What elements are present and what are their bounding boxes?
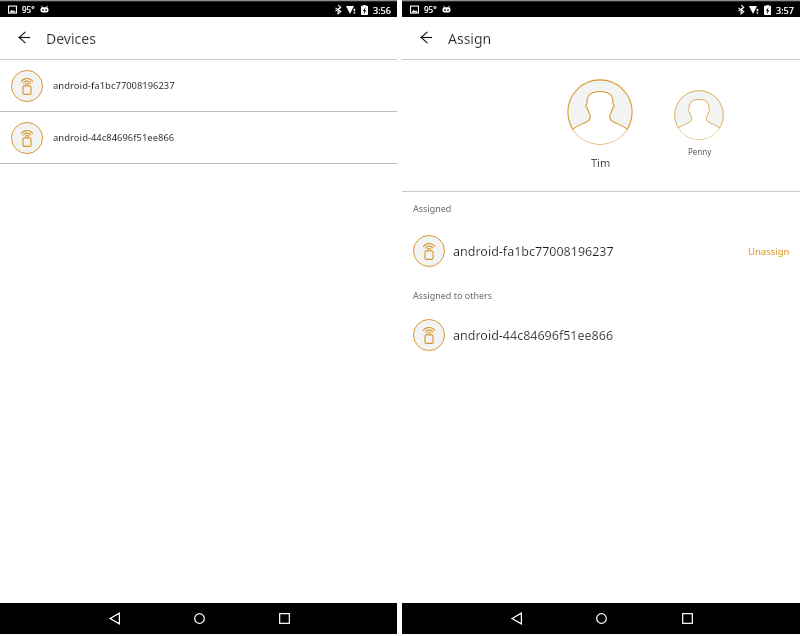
staticText: 3:56 xyxy=(373,4,391,16)
button[interactable]: android-44c84696f51ee866 xyxy=(0,112,397,163)
staticText: 3:57 xyxy=(776,4,794,16)
button[interactable]: Home xyxy=(182,603,216,634)
button[interactable]: android-44c84696f51ee866 xyxy=(402,315,800,355)
staticText: Assigned to others xyxy=(413,289,493,301)
staticText: android-fa1bc77008196237 xyxy=(53,79,175,92)
button[interactable]: Home xyxy=(584,603,618,634)
button[interactable]: Back xyxy=(98,603,132,634)
staticText: android-44c84696f51ee866 xyxy=(53,131,175,144)
button[interactable]: android-fa1bc77008196237 xyxy=(402,231,800,271)
button[interactable]: android-fa1bc77008196237 xyxy=(0,60,397,111)
staticText: 95° xyxy=(424,4,437,15)
button[interactable]: Back xyxy=(0,17,49,59)
button[interactable]: Back xyxy=(402,17,451,59)
staticText: Unassign xyxy=(748,245,790,258)
staticText: 95° xyxy=(22,4,35,15)
staticText: Devices xyxy=(46,29,96,48)
staticText: Tim xyxy=(591,155,611,170)
button[interactable]: Recents xyxy=(267,603,301,634)
button[interactable]: Unassign xyxy=(738,239,800,264)
button[interactable] xyxy=(567,79,633,145)
staticText: android-44c84696f51ee866 xyxy=(453,327,614,344)
staticText: Assigned xyxy=(413,202,452,214)
staticText: android-fa1bc77008196237 xyxy=(453,243,614,260)
button[interactable] xyxy=(674,90,724,140)
button[interactable]: Back xyxy=(500,603,534,634)
button[interactable]: Recents xyxy=(670,603,704,634)
staticText: Assign xyxy=(448,29,492,48)
staticText: Penny xyxy=(688,146,712,157)
